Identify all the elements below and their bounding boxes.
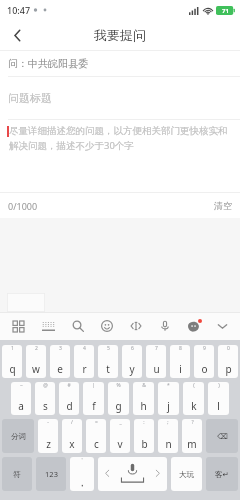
button[interactable]: Stickers (179, 312, 208, 340)
staticText: p (225, 362, 232, 376)
button[interactable]: Keyboard (33, 312, 63, 340)
button[interactable]: Key w (26, 345, 46, 378)
staticText: & (142, 382, 146, 389)
staticText: z (46, 437, 51, 451)
button[interactable]: Hide keyboard (208, 312, 237, 340)
button[interactable]: Voice input (150, 312, 179, 340)
button[interactable]: Key l (208, 382, 229, 415)
button[interactable]: Key g (108, 382, 129, 415)
button[interactable]: 问：中共皖阳县委 (0, 51, 240, 76)
staticText: 问题标题 (8, 91, 52, 105)
staticText: x (69, 437, 75, 451)
staticText: _ (119, 419, 122, 426)
staticText: ; (167, 419, 169, 426)
button[interactable]: Space (98, 457, 167, 491)
button[interactable]: Key e (50, 345, 70, 378)
button[interactable]: Key x (62, 419, 82, 453)
button[interactable]: Key s (35, 382, 55, 415)
button[interactable]: Emoji (92, 312, 121, 340)
staticText: o (201, 362, 208, 376)
button[interactable]: 问题标题 (0, 77, 240, 119)
button[interactable]: Key y (122, 345, 142, 378)
staticText: 客↵ (215, 470, 229, 479)
button[interactable]: Key m (182, 419, 202, 453)
staticText: ? (191, 419, 194, 426)
button[interactable]: Key r (74, 345, 94, 378)
staticText: r (82, 362, 87, 376)
staticText: * (167, 382, 170, 389)
staticText: d (66, 399, 73, 413)
button[interactable]: Key i (170, 345, 190, 378)
button[interactable]: Key 客↵ (206, 457, 238, 491)
button[interactable]: Back (0, 20, 34, 50)
button[interactable]: Key c (86, 419, 106, 453)
staticText: | (92, 382, 95, 389)
staticText: 123 (45, 469, 58, 479)
button[interactable]: Key t (98, 345, 118, 378)
button[interactable]: Search (63, 312, 92, 340)
staticText: : (143, 419, 145, 426)
staticText: 大玩 (179, 470, 194, 479)
staticText: 3 (59, 345, 62, 352)
button[interactable]: Key f (83, 382, 104, 415)
button[interactable]: Key q (2, 345, 22, 378)
staticText: j (167, 399, 170, 413)
button[interactable]: 尽量详细描述您的问题，以方便相关部门更快核实和解决问题，描述不少于30个字 (0, 120, 240, 192)
staticText: = (95, 419, 98, 426)
staticText: 2 (35, 345, 38, 352)
staticText: % (116, 382, 121, 389)
button[interactable]: Panels (3, 312, 33, 340)
staticText: 0/1000 (8, 200, 38, 212)
staticText: q (9, 362, 16, 376)
button[interactable]: Key 123 (36, 457, 66, 491)
button[interactable]: Key v (110, 419, 130, 453)
button[interactable]: Key h (133, 382, 154, 415)
button[interactable]: Key n (158, 419, 178, 453)
button[interactable]: Key z (38, 419, 58, 453)
staticText: h (140, 399, 147, 413)
button[interactable]: Key p (218, 345, 238, 378)
staticText: 7 (155, 345, 158, 352)
staticText: # (67, 382, 71, 389)
button[interactable]: Key ， (70, 457, 94, 491)
staticText: 9 (203, 345, 206, 352)
staticText: b (141, 437, 148, 451)
staticText: ( (193, 382, 195, 389)
staticText: i (179, 362, 182, 376)
staticText: / (71, 419, 73, 426)
staticText: @ (43, 382, 48, 389)
staticText: k (191, 399, 197, 413)
staticText: m (187, 437, 197, 451)
button[interactable]: Key a (11, 382, 31, 415)
staticText: 71 (222, 7, 229, 15)
button[interactable]: Key ⌫ (206, 419, 238, 453)
staticText: 5 (107, 345, 110, 352)
button[interactable]: Key k (183, 382, 204, 415)
button[interactable]: Key o (194, 345, 214, 378)
button[interactable]: 清空 (206, 193, 240, 218)
staticText: g (115, 399, 122, 413)
staticText: ， (77, 476, 87, 489)
button[interactable]: Key 大玩 (171, 457, 202, 491)
staticText: - (47, 419, 49, 426)
button[interactable]: Key 分词 (2, 419, 34, 453)
staticText: 我要提问 (94, 27, 146, 43)
staticText: l (217, 399, 220, 413)
button[interactable]: Key 符 (2, 457, 32, 491)
staticText: y (129, 362, 135, 376)
staticText: n (165, 437, 172, 451)
staticText: f (92, 399, 96, 413)
staticText: 1 (11, 345, 14, 352)
staticText: 尽量详细描述您的问题，以方便相关部门更快核实和解决问题，描述不少于30个字 (9, 125, 233, 152)
staticText: 10:47 (7, 4, 31, 16)
staticText: 问：中共皖阳县委 (8, 57, 88, 70)
button[interactable]: Key d (59, 382, 79, 415)
button[interactable]: Key b (134, 419, 154, 453)
button[interactable]: Key j (158, 382, 179, 415)
button[interactable]: Add image (7, 293, 45, 312)
button[interactable]: Move cursor (121, 312, 150, 340)
staticText: ~ (20, 382, 23, 389)
staticText: v (117, 437, 123, 451)
button[interactable]: Key u (146, 345, 166, 378)
staticText: 符 (13, 470, 21, 479)
